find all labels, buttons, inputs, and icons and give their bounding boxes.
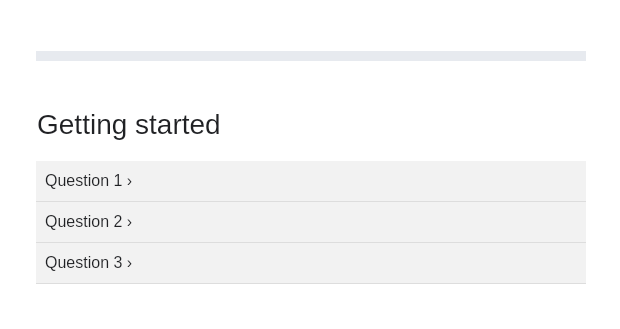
staticText: Question 2 › [45, 213, 133, 231]
staticText: Getting started [37, 109, 221, 140]
staticText: Question 3 › [45, 254, 133, 272]
staticText: Question 1 › [45, 172, 133, 190]
button[interactable]: Question 1 › [36, 161, 586, 201]
button[interactable]: Question 2 › [36, 202, 586, 242]
button[interactable]: Question 3 › [36, 243, 586, 283]
